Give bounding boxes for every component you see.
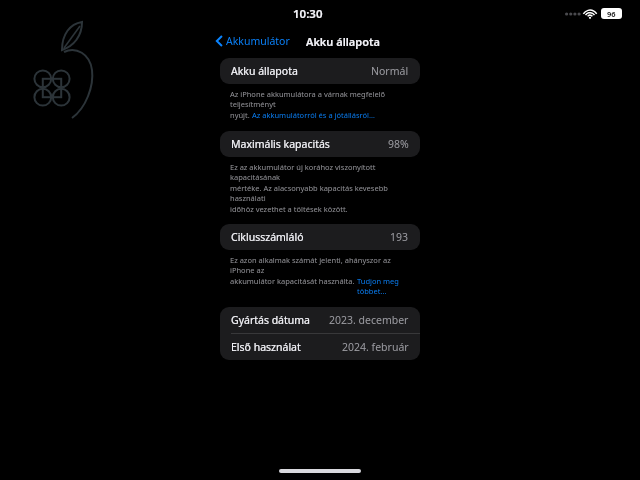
staticText: 98% xyxy=(388,137,409,151)
staticText: Első használat xyxy=(231,340,301,354)
staticText: Gyártás dátuma xyxy=(231,313,311,327)
staticText: Az iPhone akkumulátora a várnak megfelel… xyxy=(230,89,416,109)
staticText: Ez az akkumulátor új korához viszonyítot… xyxy=(230,162,416,182)
staticText: mértéke. Az alacsonyabb kapacitás kevese… xyxy=(230,183,416,203)
staticText: Normál xyxy=(371,64,409,78)
button[interactable]: Tudjon meg többet… xyxy=(357,276,416,296)
staticText: nyújt. xyxy=(230,110,252,120)
staticText: 2023. december xyxy=(329,313,409,327)
button[interactable]: Ciklusszámláló xyxy=(220,224,420,250)
staticText: Akku állapota xyxy=(306,34,380,49)
staticText: 2024. február xyxy=(342,340,409,354)
staticText: 96 xyxy=(607,9,616,19)
staticText: Akkumulátor xyxy=(226,34,290,48)
button[interactable]: Gyártás dátuma xyxy=(220,307,420,333)
staticText: időhöz vezethet a töltések között. xyxy=(230,204,348,214)
staticText: 10:30 xyxy=(293,6,323,22)
button[interactable]: Akku állapota xyxy=(220,58,420,84)
button[interactable]: Maximális kapacitás xyxy=(220,131,420,157)
staticText: Ez azon alkalmak számát jelenti, ahánysz… xyxy=(230,255,416,275)
button[interactable]: Az akkumulátorról és a jótállásról… xyxy=(252,110,375,120)
button[interactable]: Első használat xyxy=(220,334,420,360)
staticText: Ciklusszámláló xyxy=(231,230,304,244)
staticText: Akku állapota xyxy=(231,64,298,78)
button[interactable]: Akkumulátor xyxy=(214,30,292,52)
staticText: Maximális kapacitás xyxy=(231,137,330,151)
staticText: 193 xyxy=(390,230,409,244)
staticText: akkumulátor kapacitását használta. xyxy=(230,276,357,286)
